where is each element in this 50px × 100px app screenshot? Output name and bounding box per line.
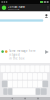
button[interactable]: More options [46, 4, 50, 11]
button[interactable]: Keyboard key [42, 73, 47, 80]
button[interactable]: Keyboard key [5, 65, 10, 72]
staticText: in the box [9, 57, 24, 60]
button[interactable]: Keyboard key [10, 65, 15, 72]
button[interactable]: Contact avatar [2, 5, 6, 10]
button[interactable]: Keyboard key [8, 88, 12, 95]
button[interactable]: Keyboard key [36, 88, 40, 95]
button[interactable]: Keyboard key [35, 65, 40, 72]
button[interactable]: Home [24, 98, 26, 99]
button[interactable]: Keyboard key [45, 65, 49, 72]
button[interactable]: Keyboard key [42, 81, 48, 87]
button[interactable]: Sticker [5, 50, 7, 53]
staticText: last seen recently [7, 9, 19, 10]
button[interactable]: Keyboard key [3, 88, 8, 95]
staticText: Contact Name [7, 5, 25, 9]
staticText: Some message here is typed [9, 49, 36, 56]
button[interactable]: Keyboard key [40, 88, 47, 95]
button[interactable]: Emoji [1, 50, 4, 53]
button[interactable]: Keyboard key [0, 65, 5, 72]
button[interactable]: Back [11, 98, 13, 99]
button[interactable]: Send [45, 50, 49, 54]
button[interactable]: Keyboard key [40, 65, 45, 72]
